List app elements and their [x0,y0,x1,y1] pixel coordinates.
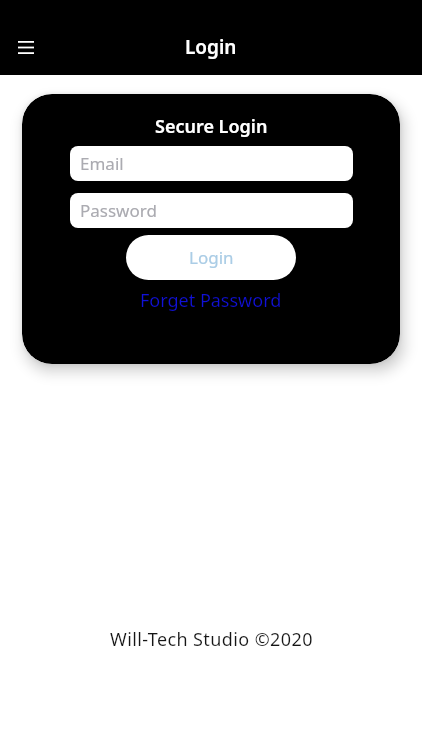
button[interactable] [10,31,42,63]
button[interactable]: Login [126,235,296,280]
staticText: Secure Login [155,114,268,139]
staticText: Login [189,246,234,269]
button[interactable]: Forget Password [140,288,282,313]
staticText: Login [185,34,237,60]
staticText: Email [80,152,124,175]
button[interactable]: Email [70,146,353,181]
staticText: Will-Tech Studio ©2020 [110,627,313,652]
button[interactable]: Password [70,193,353,228]
staticText: Password [80,199,157,222]
